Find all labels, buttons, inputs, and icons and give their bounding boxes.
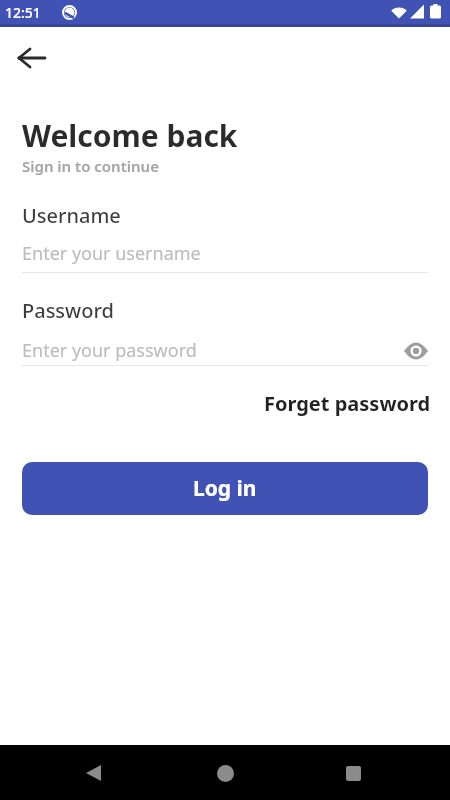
button[interactable] [69,749,117,797]
button[interactable] [329,749,377,797]
staticText: Sign in to continue [22,156,159,176]
staticText: Log in [193,474,257,503]
staticText: Welcome back [22,115,238,156]
staticText: Forget password [264,390,431,417]
button[interactable]: Enter your username [22,241,428,266]
staticText: Username [22,202,121,229]
staticText: Enter your username [22,241,201,266]
button[interactable] [10,36,54,80]
button[interactable]: Forget password [264,390,431,417]
button[interactable]: Enter your password [22,338,428,363]
staticText: 12:51 [5,3,41,22]
staticText: Password [22,297,114,324]
staticText: Enter your password [22,338,197,363]
button[interactable] [201,749,249,797]
button[interactable]: Log in [22,462,428,515]
